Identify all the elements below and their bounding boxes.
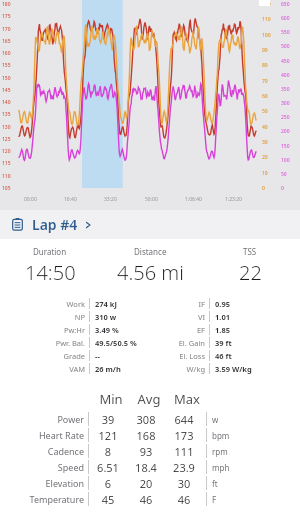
staticText: 400	[281, 72, 290, 79]
staticText: 644	[165, 412, 203, 427]
staticText: 00:00	[24, 196, 37, 203]
staticText: Elevation	[0, 477, 84, 489]
staticText: 168	[127, 428, 165, 443]
staticText: 135	[2, 111, 11, 118]
staticText: 650	[281, 1, 290, 8]
staticText: Pw:Hr	[0, 325, 85, 335]
staticText: 274 kJ	[95, 299, 176, 309]
staticText: 165	[2, 38, 11, 45]
staticText: 26 m/h	[95, 364, 176, 374]
staticText: 45	[89, 492, 127, 507]
staticText: 30	[165, 476, 203, 491]
staticText: 60	[262, 93, 268, 100]
staticText: F	[212, 494, 217, 505]
staticText: 16:40	[64, 196, 77, 203]
staticText: 90	[262, 47, 268, 54]
staticText: 8	[89, 444, 127, 459]
staticText: 80	[262, 62, 268, 69]
button[interactable]: Lap details	[0, 210, 300, 239]
staticText: 250	[281, 114, 290, 121]
staticText: 140	[2, 99, 11, 106]
staticText: 150	[281, 143, 290, 150]
staticText: Temperature	[0, 493, 84, 505]
staticText: 33:20	[104, 196, 117, 203]
staticText: 0.95	[215, 299, 230, 309]
staticText: Cadence	[0, 445, 84, 457]
staticText: Duration	[33, 246, 67, 257]
staticText: 10	[262, 170, 268, 177]
staticText: 6	[89, 476, 127, 491]
staticText: 110	[262, 16, 271, 23]
staticText: El. Gain	[176, 338, 205, 348]
staticText: 150	[2, 75, 11, 82]
staticText: 1.85	[215, 325, 230, 335]
staticText: 40	[262, 124, 268, 131]
staticText: 115	[2, 160, 11, 167]
staticText: 300	[281, 100, 290, 107]
staticText: ft	[212, 478, 218, 489]
staticText: 170	[2, 26, 11, 33]
staticText: 0	[281, 185, 284, 192]
staticText: El. Loss	[176, 351, 205, 361]
staticText: NP	[0, 312, 85, 322]
staticText: 20	[127, 476, 165, 491]
staticText: 4.56 mi	[117, 259, 184, 286]
staticText: --	[95, 351, 176, 361]
staticText: Distance	[134, 246, 167, 257]
staticText: 100	[281, 157, 290, 164]
staticText: 450	[281, 58, 290, 65]
staticText: 125	[2, 136, 11, 143]
staticText: 120	[262, 1, 271, 8]
staticText: 1.01	[215, 312, 230, 322]
staticText: 22	[239, 259, 262, 286]
staticText: 145	[2, 87, 11, 94]
staticText: 23.9	[165, 460, 203, 475]
staticText: 46 ft	[215, 351, 232, 361]
staticText: Power	[0, 413, 84, 425]
staticText: Min	[92, 390, 130, 408]
other: Lap details	[11, 218, 24, 231]
staticText: 121	[89, 428, 127, 443]
staticText: 310 w	[95, 312, 176, 322]
staticText: w	[212, 414, 219, 425]
staticText: 105	[2, 185, 11, 192]
staticText: 200	[281, 128, 290, 135]
staticText: 350	[281, 86, 290, 93]
staticText: 14:50	[25, 259, 76, 286]
staticText: 100	[262, 32, 271, 39]
staticText: 111	[165, 444, 203, 459]
staticText: 20	[262, 154, 268, 161]
staticText: 50	[262, 108, 268, 115]
staticText: 120	[2, 148, 11, 155]
staticText: bpm	[212, 430, 230, 441]
staticText: 30	[262, 139, 268, 146]
staticText: 46	[127, 492, 165, 507]
staticText: IF	[176, 299, 205, 309]
staticText: 93	[127, 444, 165, 459]
staticText: 3.49 %	[95, 325, 176, 335]
staticText: mph	[212, 462, 230, 473]
staticText: 70	[262, 78, 268, 85]
staticText: 1:06:40	[185, 196, 202, 203]
staticText: 550	[281, 29, 290, 36]
staticText: EF	[176, 325, 205, 335]
staticText: 130	[2, 124, 11, 131]
staticText: Speed	[0, 461, 84, 473]
staticText: rpm	[212, 446, 228, 457]
staticText: 6.51	[89, 460, 127, 475]
staticText: 600	[281, 15, 290, 22]
staticText: Work	[0, 299, 85, 309]
staticText: 3.59 W/kg	[215, 364, 252, 374]
staticText: VAM	[0, 364, 85, 374]
staticText: 1:23:20	[225, 196, 242, 203]
staticText: 160	[2, 50, 11, 57]
staticText: Lap #4	[32, 215, 78, 234]
staticText: 46	[165, 492, 203, 507]
staticText: 39 ft	[215, 338, 232, 348]
staticText: 175	[2, 13, 11, 20]
staticText: VI	[176, 312, 205, 322]
staticText: W/kg	[176, 364, 205, 374]
staticText: Heart Rate	[0, 429, 84, 441]
staticText: Avg	[130, 390, 168, 408]
staticText: TSS	[243, 246, 257, 257]
